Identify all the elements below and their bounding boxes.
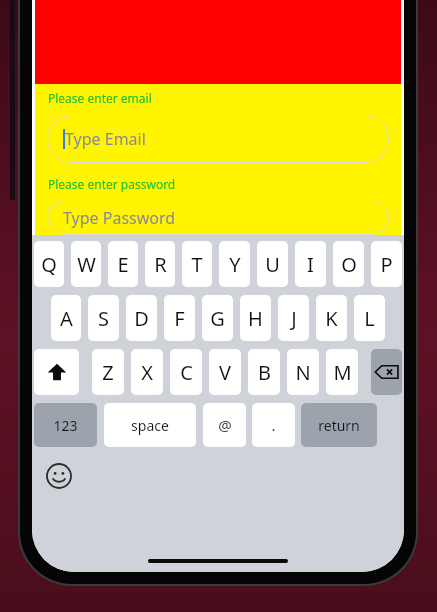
button[interactable]: N: [287, 349, 319, 395]
button[interactable]: Shift: [34, 349, 79, 395]
button[interactable]: D: [126, 295, 157, 341]
staticText: T: [191, 251, 203, 278]
button[interactable]: space: [104, 403, 196, 447]
staticText: 123: [53, 416, 78, 435]
staticText: space: [131, 416, 169, 435]
staticText: R: [154, 251, 167, 278]
staticText: return: [318, 416, 360, 435]
staticText: F: [174, 305, 185, 332]
staticText: L: [364, 305, 375, 332]
staticText: V: [219, 359, 231, 386]
staticText: S: [98, 305, 109, 332]
staticText: Z: [102, 359, 114, 386]
staticText: H: [248, 305, 263, 332]
button[interactable]: 123: [34, 403, 97, 447]
staticText: A: [60, 305, 73, 332]
button[interactable]: B: [248, 349, 280, 395]
staticText: Y: [229, 251, 241, 278]
button[interactable]: R: [145, 241, 175, 287]
button[interactable]: X: [131, 349, 163, 395]
button[interactable]: @: [203, 403, 246, 447]
button[interactable]: S: [88, 295, 119, 341]
staticText: E: [117, 251, 129, 278]
staticText: Type Email: [65, 128, 146, 150]
button[interactable]: A: [51, 295, 81, 341]
button[interactable]: F: [164, 295, 195, 341]
button[interactable]: H: [240, 295, 271, 341]
staticText: U: [265, 251, 280, 278]
button[interactable]: W: [71, 241, 101, 287]
staticText: Type Password: [63, 207, 176, 229]
staticText: G: [210, 305, 225, 332]
button[interactable]: Type Email: [47, 115, 389, 163]
button[interactable]: Backspace: [371, 349, 402, 395]
button[interactable]: O: [333, 241, 364, 287]
button[interactable]: return: [301, 403, 377, 447]
staticText: O: [341, 251, 357, 278]
staticText: N: [295, 359, 311, 386]
staticText: M: [333, 359, 352, 386]
staticText: D: [134, 305, 149, 332]
staticText: Please enter email: [48, 90, 152, 106]
staticText: @: [218, 415, 232, 435]
button[interactable]: T: [182, 241, 212, 287]
button[interactable]: J: [278, 295, 309, 341]
staticText: K: [325, 305, 338, 332]
button[interactable]: Z: [92, 349, 124, 395]
button[interactable]: U: [257, 241, 288, 287]
button[interactable]: E: [108, 241, 138, 287]
button[interactable]: K: [316, 295, 347, 341]
staticText: .: [271, 415, 276, 435]
button[interactable]: P: [371, 241, 402, 287]
button[interactable]: V: [209, 349, 241, 395]
button[interactable]: Type Password: [47, 201, 389, 235]
staticText: C: [180, 359, 193, 386]
staticText: Please enter password: [48, 176, 176, 192]
button[interactable]: C: [170, 349, 202, 395]
staticText: I: [307, 251, 314, 278]
button[interactable]: I: [295, 241, 326, 287]
button[interactable]: Q: [34, 241, 64, 287]
staticText: P: [380, 251, 393, 278]
staticText: B: [258, 359, 271, 386]
button[interactable]: L: [354, 295, 385, 341]
button[interactable]: Emoji keyboard: [46, 463, 72, 489]
staticText: Q: [41, 251, 57, 278]
button[interactable]: M: [326, 349, 358, 395]
button[interactable]: .: [252, 403, 295, 447]
staticText: X: [141, 359, 153, 386]
button[interactable]: G: [202, 295, 233, 341]
button[interactable]: Y: [219, 241, 250, 287]
staticText: W: [77, 251, 96, 278]
staticText: J: [291, 305, 297, 332]
